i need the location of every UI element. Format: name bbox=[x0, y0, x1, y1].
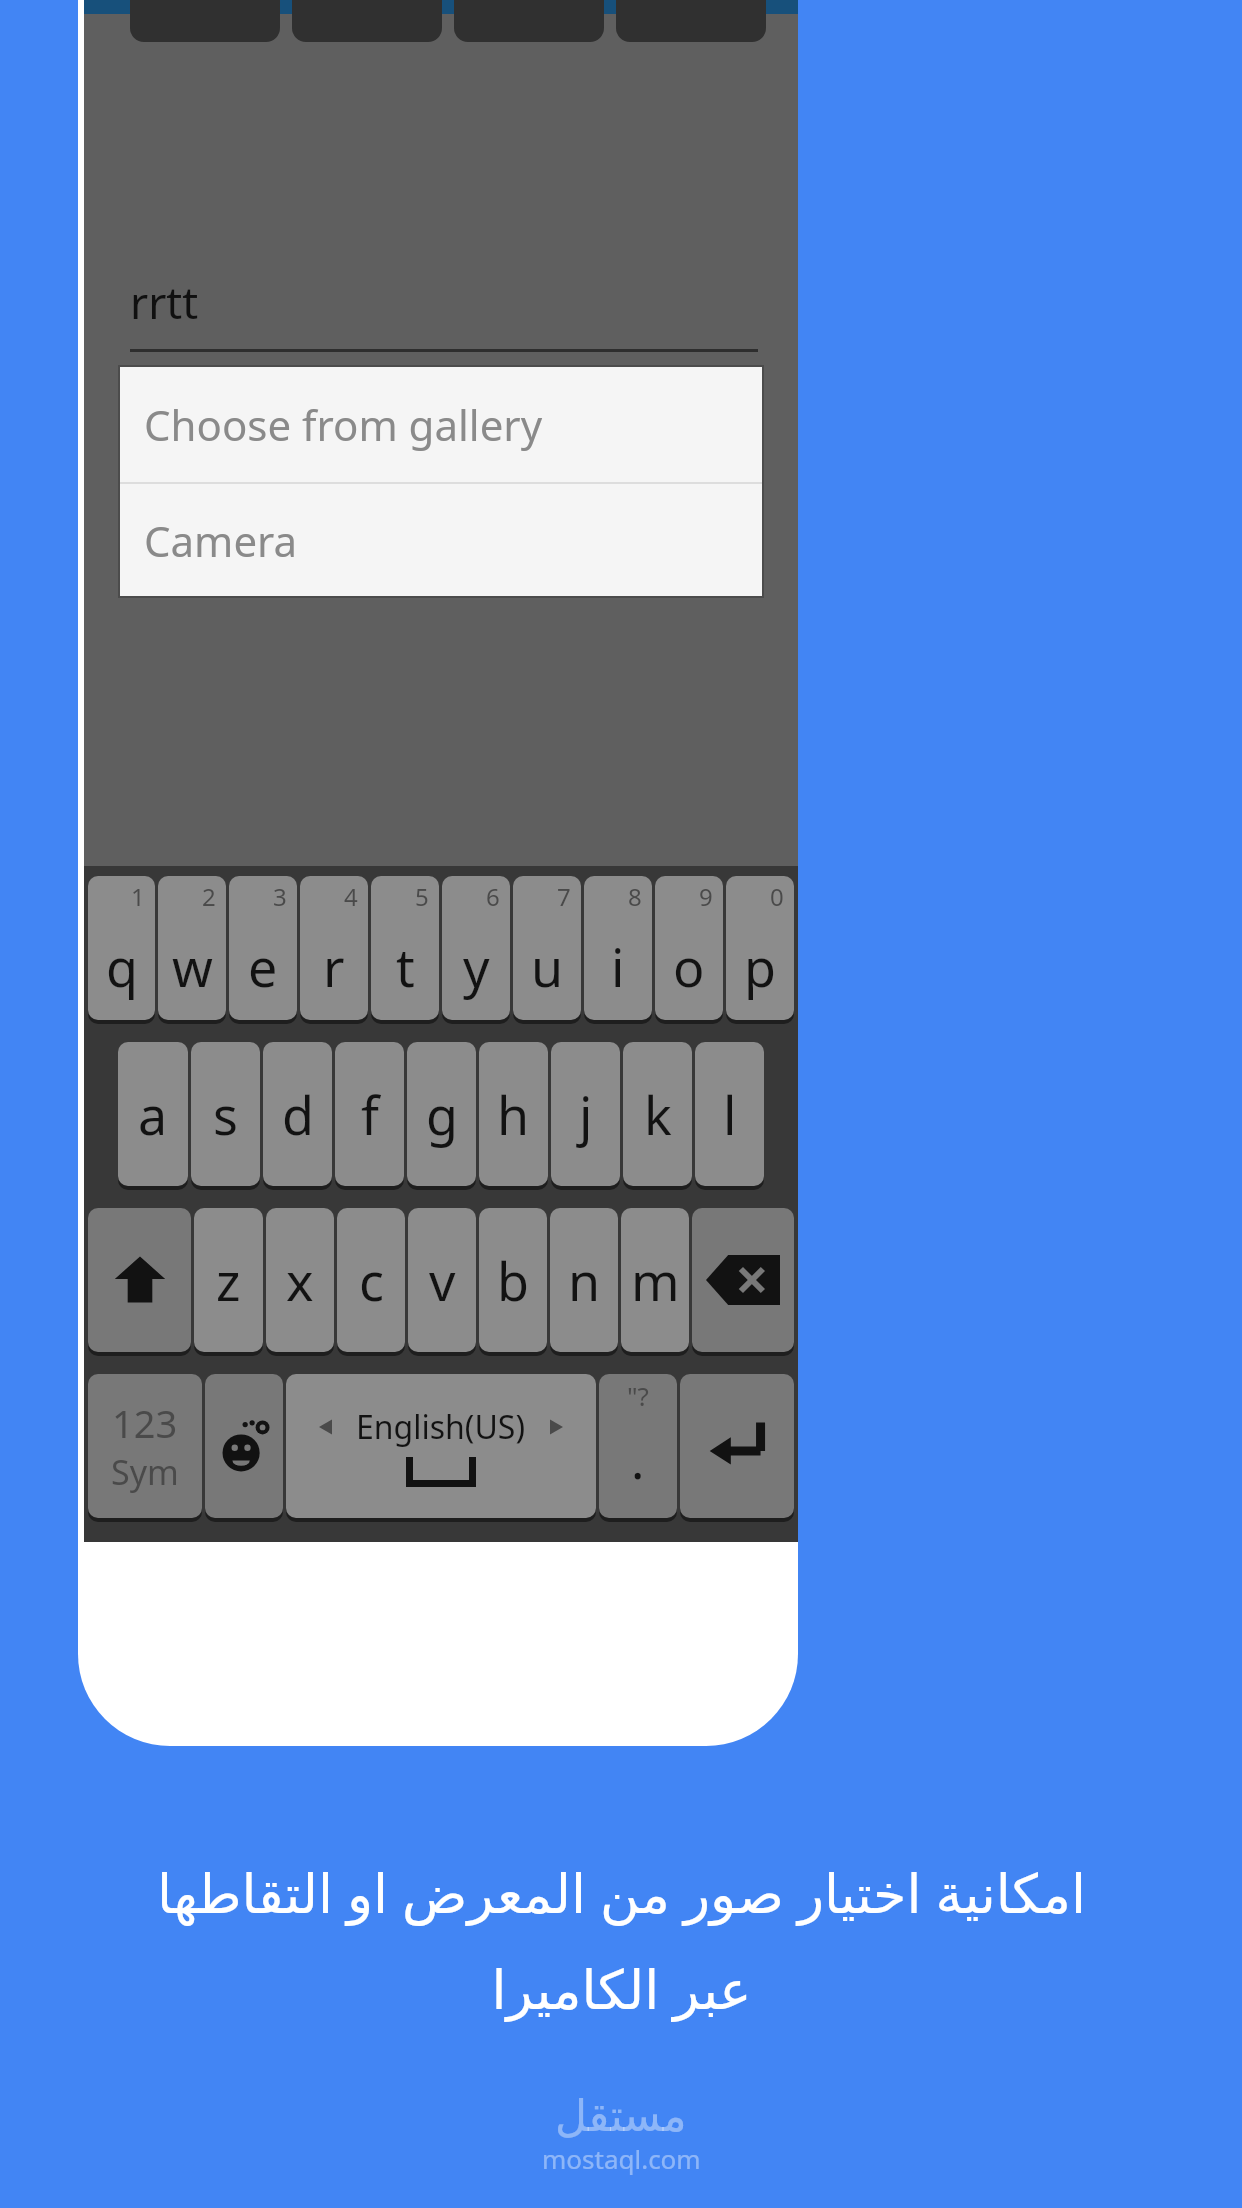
staticText: English(US) bbox=[356, 1405, 526, 1449]
button[interactable]: d bbox=[263, 1042, 332, 1186]
button[interactable]: g bbox=[407, 1042, 476, 1186]
button[interactable]: k bbox=[623, 1042, 692, 1186]
button[interactable]: s bbox=[191, 1042, 260, 1186]
staticText: p bbox=[744, 931, 776, 1002]
button[interactable]: z bbox=[194, 1208, 263, 1352]
button[interactable] bbox=[454, 0, 604, 42]
staticText: s bbox=[213, 1079, 238, 1150]
button[interactable]: 5 bbox=[371, 876, 439, 1020]
button[interactable]: 123 bbox=[88, 1374, 202, 1518]
staticText: q bbox=[106, 931, 138, 1002]
staticText: Choose from gallery bbox=[144, 396, 543, 453]
button[interactable] bbox=[616, 0, 766, 42]
button[interactable]: l bbox=[695, 1042, 764, 1186]
button[interactable]: n bbox=[550, 1208, 618, 1352]
staticText: عبر الكاميرا bbox=[491, 1951, 752, 2025]
button[interactable]: Choose from gallery bbox=[120, 367, 762, 482]
staticText: امكانية اختيار صور من المعرض او التقاطها bbox=[157, 1855, 1086, 1929]
button[interactable]: b bbox=[479, 1208, 547, 1352]
staticText: m bbox=[631, 1245, 680, 1316]
staticText: e bbox=[248, 931, 278, 1002]
button[interactable] bbox=[292, 0, 442, 42]
staticText: z bbox=[216, 1245, 241, 1316]
button[interactable]: 0 bbox=[726, 876, 794, 1020]
button[interactable]: Shift bbox=[88, 1208, 191, 1352]
staticText: Sym bbox=[111, 1449, 179, 1495]
button[interactable]: a bbox=[118, 1042, 188, 1186]
staticText: 1 bbox=[131, 880, 145, 913]
button[interactable]: h bbox=[479, 1042, 548, 1186]
button[interactable]: Emoji bbox=[205, 1374, 283, 1518]
staticText: مستقل bbox=[555, 2090, 687, 2141]
button[interactable]: f bbox=[335, 1042, 404, 1186]
button[interactable]: Camera bbox=[120, 484, 762, 596]
staticText: 0 bbox=[770, 880, 784, 913]
staticText: u bbox=[531, 931, 564, 1002]
staticText: o bbox=[673, 931, 705, 1002]
staticText: 7 bbox=[557, 880, 571, 913]
button[interactable]: 7 bbox=[513, 876, 581, 1020]
staticText: w bbox=[172, 931, 213, 1002]
staticText: 123 bbox=[112, 1397, 178, 1449]
staticText: y bbox=[463, 931, 490, 1002]
button[interactable]: j bbox=[551, 1042, 620, 1186]
staticText: rrtt bbox=[130, 272, 199, 332]
button[interactable]: 2 bbox=[158, 876, 226, 1020]
staticText: j bbox=[579, 1079, 593, 1150]
staticText: i bbox=[611, 931, 625, 1002]
staticText: t bbox=[396, 931, 415, 1002]
button[interactable]: Enter bbox=[680, 1374, 794, 1518]
button[interactable]: x bbox=[266, 1208, 334, 1352]
staticText: b bbox=[497, 1245, 529, 1316]
staticText: d bbox=[282, 1079, 314, 1150]
staticText: 5 bbox=[415, 880, 429, 913]
staticText: c bbox=[359, 1245, 384, 1316]
staticText: 8 bbox=[628, 880, 642, 913]
button[interactable]: Space bbox=[286, 1374, 596, 1518]
button[interactable]: Backspace bbox=[692, 1208, 794, 1352]
button[interactable]: "? bbox=[599, 1374, 677, 1518]
staticText: 6 bbox=[486, 880, 500, 913]
staticText: mostaql.com bbox=[542, 2141, 701, 2176]
button[interactable]: rrtt bbox=[130, 252, 758, 352]
staticText: n bbox=[568, 1245, 601, 1316]
staticText: f bbox=[361, 1079, 379, 1150]
staticText: g bbox=[426, 1079, 458, 1150]
button[interactable]: 3 bbox=[229, 876, 297, 1020]
staticText: 3 bbox=[273, 880, 287, 913]
staticText: Camera bbox=[144, 512, 298, 569]
button[interactable]: 6 bbox=[442, 876, 510, 1020]
button[interactable]: 1 bbox=[88, 876, 155, 1020]
staticText: k bbox=[644, 1079, 672, 1150]
button[interactable]: v bbox=[408, 1208, 476, 1352]
staticText: r bbox=[323, 931, 345, 1002]
staticText: 9 bbox=[699, 880, 713, 913]
staticText: a bbox=[138, 1079, 168, 1150]
staticText: v bbox=[429, 1245, 456, 1316]
button[interactable] bbox=[130, 0, 280, 42]
staticText: . bbox=[631, 1426, 645, 1494]
button[interactable]: c bbox=[337, 1208, 405, 1352]
button[interactable]: 9 bbox=[655, 876, 723, 1020]
staticText: h bbox=[497, 1079, 530, 1150]
staticText: 4 bbox=[344, 880, 358, 913]
button[interactable]: m bbox=[621, 1208, 689, 1352]
staticText: x bbox=[286, 1245, 314, 1316]
staticText: "? bbox=[627, 1378, 649, 1413]
staticText: 2 bbox=[202, 880, 216, 913]
button[interactable]: 4 bbox=[300, 876, 368, 1020]
button[interactable]: 8 bbox=[584, 876, 652, 1020]
staticText: l bbox=[723, 1079, 737, 1150]
